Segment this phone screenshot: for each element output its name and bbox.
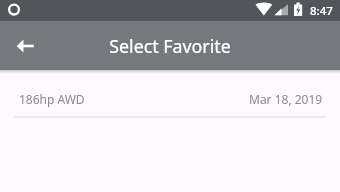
staticText: Mar 18, 2019 bbox=[249, 91, 323, 107]
button[interactable]: 186hp AWD bbox=[0, 70, 340, 116]
button[interactable]: Navigate up bbox=[8, 28, 44, 64]
staticText: 8:47 bbox=[310, 3, 333, 19]
staticText: 186hp AWD bbox=[19, 91, 85, 107]
staticText: Select Favorite bbox=[109, 34, 231, 58]
